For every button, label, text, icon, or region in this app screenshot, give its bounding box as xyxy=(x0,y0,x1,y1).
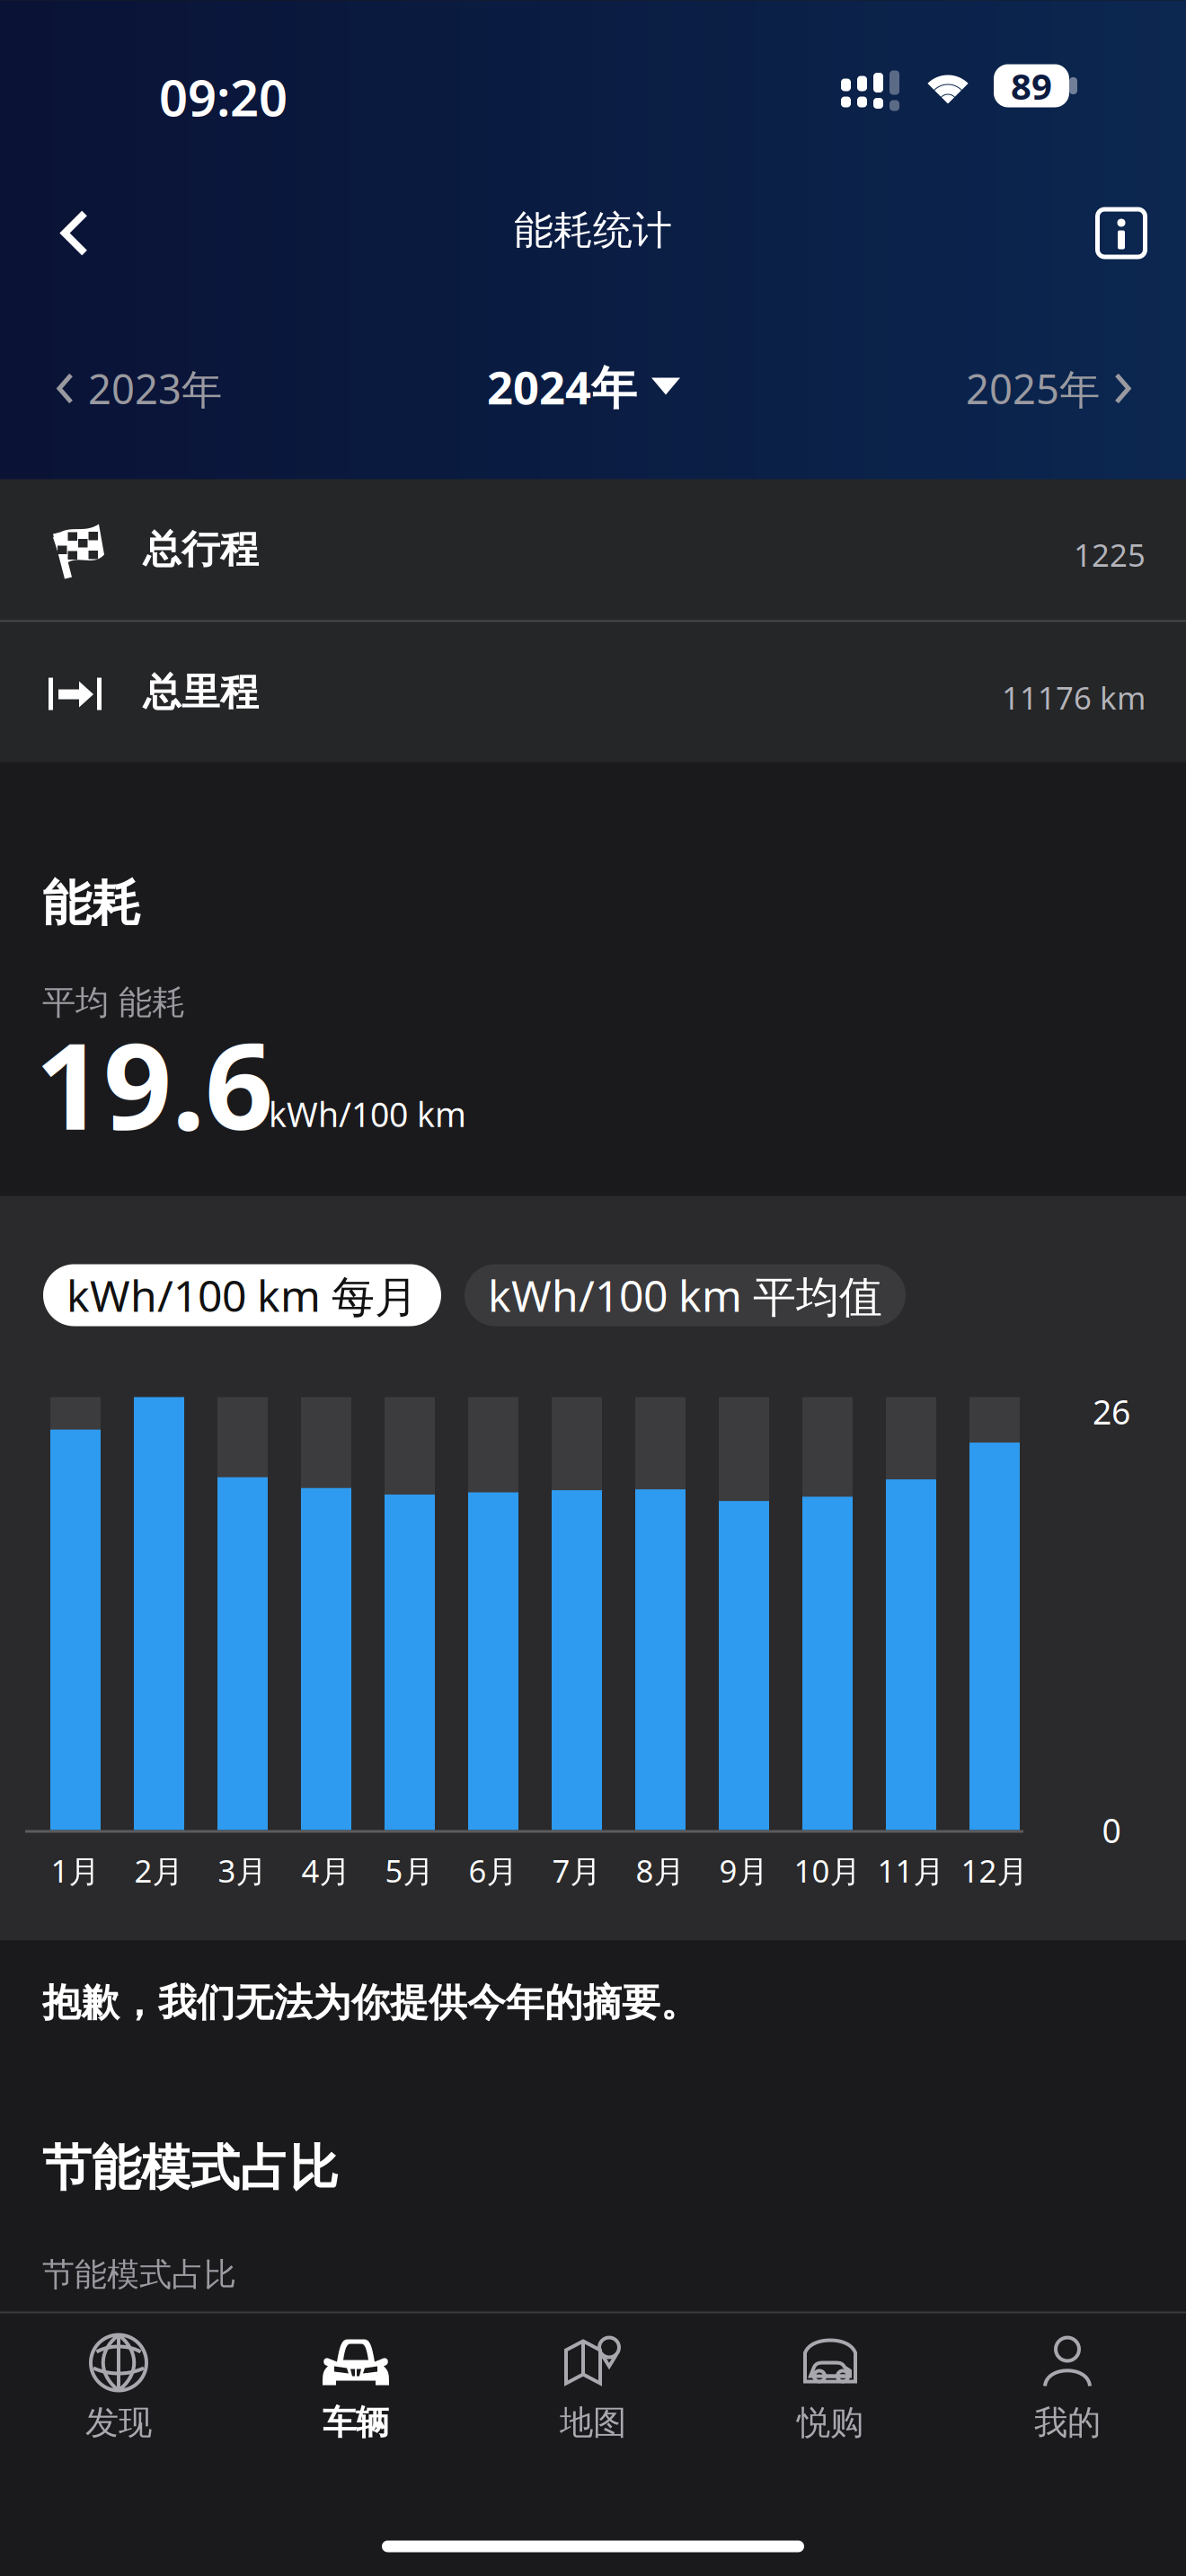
staticText: 发现 xyxy=(85,2402,152,2443)
staticText: 1225 xyxy=(1074,534,1146,575)
staticText: 1月 xyxy=(51,1850,100,1891)
button[interactable]: 信息 xyxy=(1072,184,1171,282)
staticText: 9月 xyxy=(719,1850,769,1891)
button[interactable]: 悦购 xyxy=(712,2313,949,2457)
staticText: 抱歉，我们无法为你提供今年的摘要。 xyxy=(42,1979,699,2026)
staticText: 4月 xyxy=(301,1850,351,1891)
staticText: 车辆 xyxy=(323,2402,389,2443)
button[interactable]: 2025年 xyxy=(950,345,1147,432)
staticText: 11176 km xyxy=(1002,677,1146,718)
staticText: 19.6 xyxy=(35,1004,273,1163)
staticText: 09:20 xyxy=(159,63,288,130)
staticText: 89 xyxy=(1011,62,1052,110)
button[interactable]: 2024年 xyxy=(471,344,696,430)
button[interactable]: kWh/100 km 平均值 xyxy=(465,1264,906,1326)
button[interactable]: 返回 xyxy=(25,184,124,282)
staticText: 11月 xyxy=(877,1850,945,1891)
button[interactable]: kWh/100 km 每月 xyxy=(43,1264,441,1326)
staticText: 26 xyxy=(1093,1389,1130,1434)
button[interactable]: 总行程 xyxy=(0,479,1186,620)
staticText: 总行程 xyxy=(143,526,259,573)
staticText: 我的 xyxy=(1034,2402,1101,2443)
staticText: 节能模式占比 xyxy=(42,2138,339,2198)
staticText: 能耗 xyxy=(42,873,141,934)
staticText: kWh/100 km xyxy=(269,1092,466,1136)
staticText: kWh/100 km 平均值 xyxy=(488,1266,882,1324)
staticText: 12月 xyxy=(961,1850,1028,1891)
button[interactable]: 地图 xyxy=(474,2313,712,2457)
staticText: 7月 xyxy=(552,1850,602,1891)
button[interactable]: 总里程 xyxy=(0,622,1186,763)
staticText: 3月 xyxy=(218,1850,267,1891)
staticText: 10月 xyxy=(794,1850,861,1891)
staticText: 6月 xyxy=(469,1850,518,1891)
staticText: 节能模式占比 xyxy=(42,2255,236,2295)
staticText: kWh/100 km 每月 xyxy=(66,1266,418,1324)
staticText: 5月 xyxy=(385,1850,434,1891)
staticText: 0 xyxy=(1102,1808,1121,1852)
button[interactable]: 我的 xyxy=(949,2313,1186,2457)
staticText: 8月 xyxy=(636,1850,685,1891)
staticText: 2025年 xyxy=(966,361,1100,416)
button[interactable]: 发现 xyxy=(0,2313,237,2457)
button[interactable]: 车辆 xyxy=(237,2313,474,2457)
staticText: 能耗统计 xyxy=(514,206,672,255)
staticText: 2023年 xyxy=(88,361,222,416)
staticText: 悦购 xyxy=(797,2402,863,2443)
staticText: 总里程 xyxy=(143,669,259,716)
staticText: 地图 xyxy=(560,2402,626,2443)
staticText: 2月 xyxy=(134,1850,184,1891)
button[interactable]: 2023年 xyxy=(40,345,238,432)
staticText: 2024年 xyxy=(487,356,637,417)
staticText: 平均 能耗 xyxy=(42,982,185,1023)
